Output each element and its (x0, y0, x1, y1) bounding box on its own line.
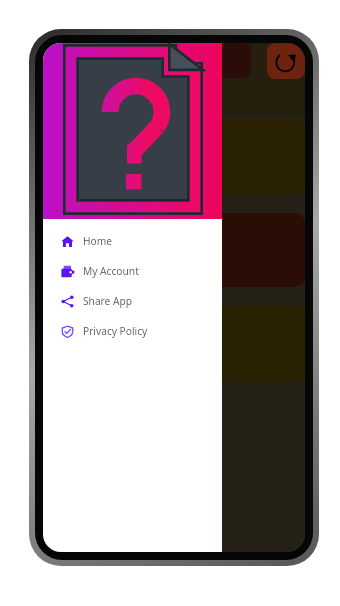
button[interactable] (43, 305, 305, 382)
staticText: Privacy Policy (83, 324, 148, 338)
staticText: My Account (83, 264, 139, 278)
button[interactable]: Privacy Policy (43, 316, 222, 346)
button[interactable]: Open navigation menu (215, 43, 251, 78)
button[interactable]: My Account (43, 256, 222, 286)
button[interactable] (43, 120, 305, 194)
staticText: Home (83, 234, 112, 248)
button[interactable]: Share App (43, 286, 222, 316)
staticText: Share App (83, 294, 133, 308)
button[interactable]: Refresh (267, 43, 305, 79)
button[interactable] (43, 213, 305, 287)
button[interactable]: Home (43, 226, 222, 256)
